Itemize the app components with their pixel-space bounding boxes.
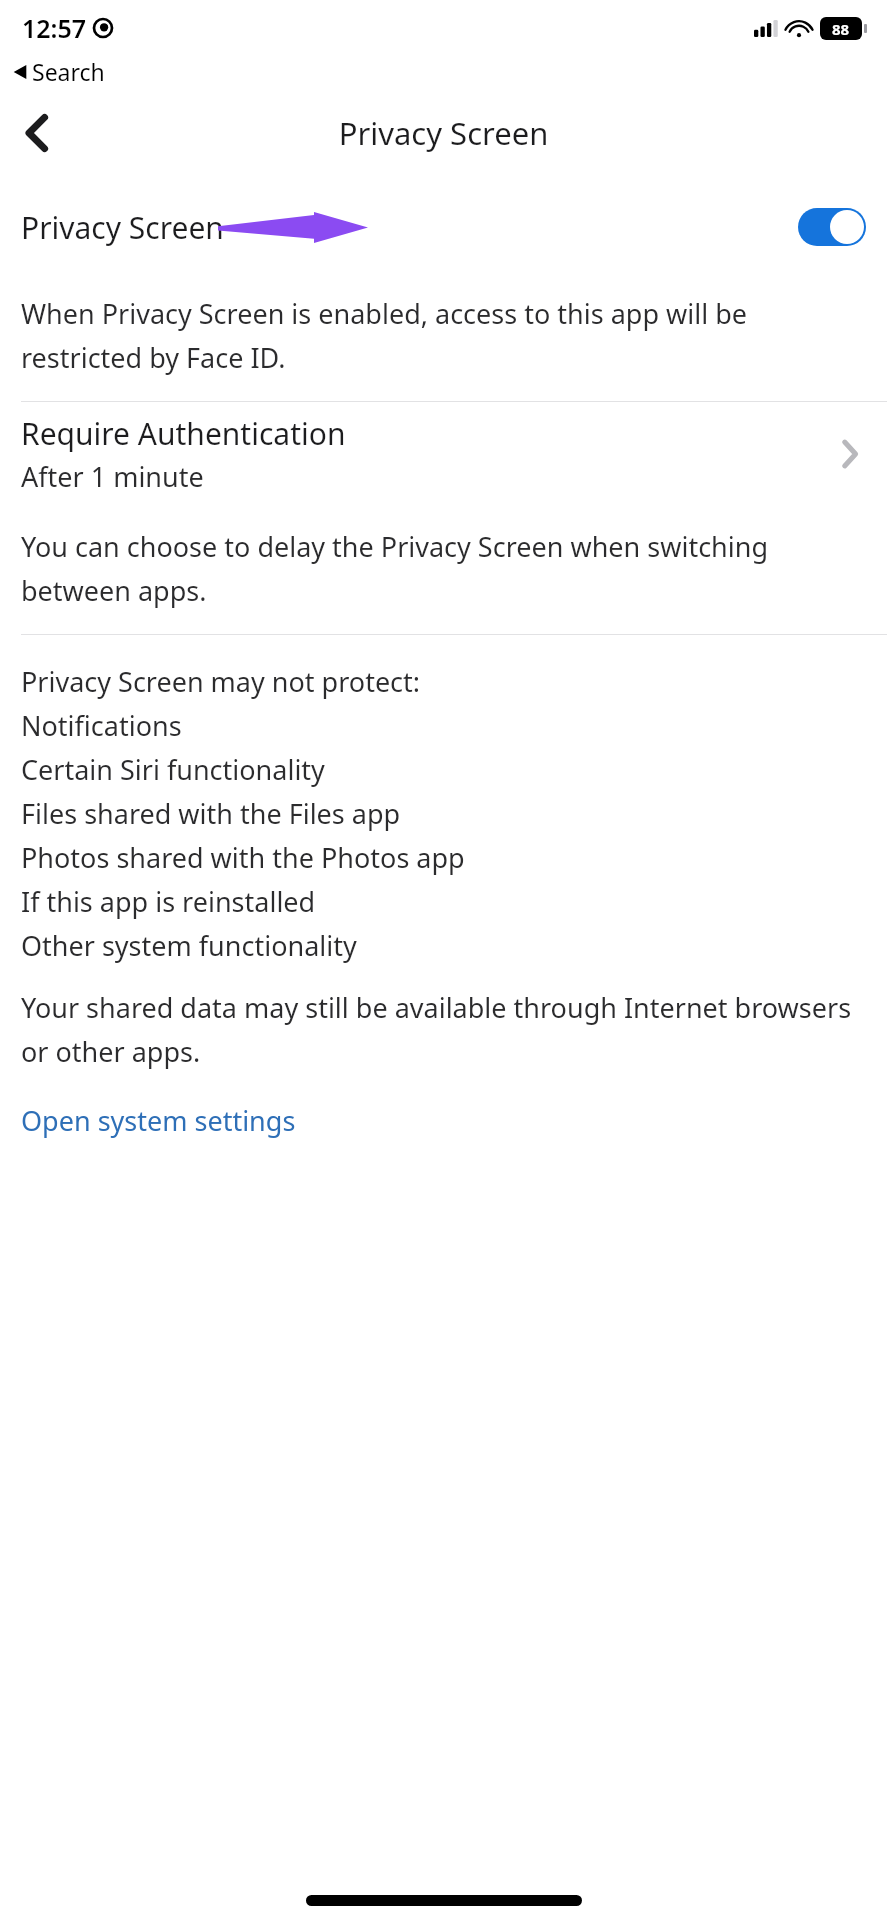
staticText: Privacy Screen may not protect: bbox=[21, 663, 421, 700]
button[interactable]: Back bbox=[0, 96, 74, 170]
staticText: Notifications bbox=[21, 707, 182, 744]
staticText: Search bbox=[32, 56, 105, 87]
staticText: 12:57 bbox=[22, 11, 87, 45]
staticText: After 1 minute bbox=[21, 458, 204, 495]
button[interactable]: Privacy Screen bbox=[0, 179, 887, 275]
staticText: Photos shared with the Photos app bbox=[21, 839, 465, 876]
staticText: Require Authentication bbox=[21, 413, 346, 454]
staticText: You can choose to delay the Privacy Scre… bbox=[21, 528, 859, 608]
staticText: Other system functionality bbox=[21, 927, 357, 964]
staticText: If this app is reinstalled bbox=[21, 883, 316, 920]
button[interactable]: Search bbox=[13, 56, 105, 87]
button[interactable]: Open system settings bbox=[0, 1095, 887, 1145]
staticText: Your shared data may still be available … bbox=[21, 989, 859, 1069]
button[interactable]: Require Authentication bbox=[0, 402, 887, 506]
staticText: Certain Siri functionality bbox=[21, 751, 325, 788]
staticText: Privacy Screen bbox=[0, 112, 887, 154]
staticText: 88 bbox=[832, 19, 850, 39]
staticText: Files shared with the Files app bbox=[21, 795, 401, 832]
button[interactable]: Privacy Screen toggle bbox=[798, 208, 866, 246]
staticText: Open system settings bbox=[21, 1102, 296, 1139]
staticText: When Privacy Screen is enabled, access t… bbox=[21, 295, 859, 375]
staticText: Privacy Screen bbox=[21, 207, 224, 248]
